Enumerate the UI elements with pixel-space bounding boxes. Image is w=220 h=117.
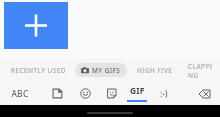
- staticText: HIGH FIVE: [137, 66, 173, 75]
- staticText: MY GIFS: [92, 66, 121, 75]
- button[interactable]: Stickers: [46, 82, 68, 105]
- button[interactable]: MY GIFS: [75, 63, 127, 77]
- button[interactable]: RECENTLY USED: [5, 62, 72, 78]
- staticText: CLAPPING: [188, 62, 215, 78]
- button[interactable]: :-): [152, 82, 176, 105]
- staticText: :-): [160, 88, 168, 100]
- button[interactable]: GIF: [124, 82, 150, 105]
- button[interactable]: Sticker face: [100, 82, 122, 105]
- staticText: GIF: [130, 85, 145, 97]
- button[interactable]: HIGH FIVE: [132, 62, 178, 78]
- staticText: RECENTLY USED: [11, 66, 66, 75]
- staticText: ABC: [11, 88, 29, 100]
- button[interactable]: Home: [87, 112, 133, 114]
- button[interactable]: Emoji: [74, 82, 96, 105]
- button[interactable]: ABC: [3, 82, 37, 105]
- button[interactable]: Backspace: [192, 82, 216, 105]
- button[interactable]: Create new GIF: [4, 2, 68, 49]
- button[interactable]: CLAPPING: [183, 62, 220, 78]
